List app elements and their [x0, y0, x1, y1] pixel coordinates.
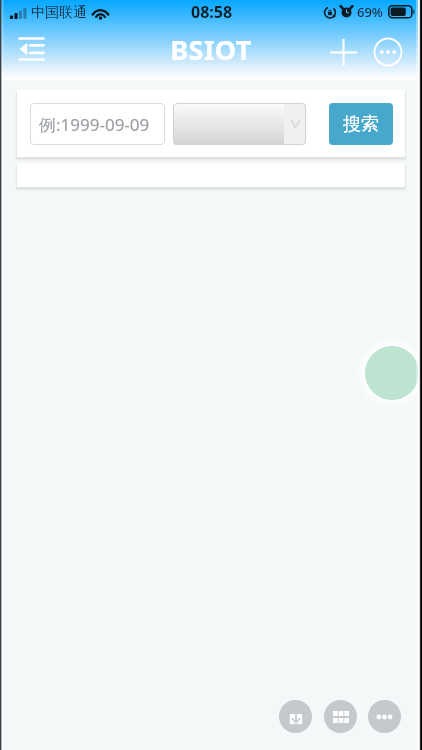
staticText: 中国联通 [31, 4, 87, 22]
staticText: 例:1999-09-09 [39, 113, 150, 136]
button[interactable]: 例:1999-09-09 [30, 103, 165, 145]
button[interactable]: Menu [9, 27, 53, 71]
button[interactable]: Download [279, 700, 312, 733]
staticText: 69% [357, 3, 383, 21]
button[interactable]: Grid view [324, 700, 357, 733]
button[interactable]: Select type [173, 103, 306, 145]
button[interactable]: More options [368, 700, 401, 733]
button[interactable]: 搜索 [329, 103, 393, 145]
button[interactable]: More [366, 30, 410, 74]
staticText: 搜索 [343, 113, 379, 136]
staticText: 08:58 [191, 1, 233, 23]
staticText: BSIOT [0, 31, 422, 68]
button[interactable]: Add [321, 30, 365, 74]
